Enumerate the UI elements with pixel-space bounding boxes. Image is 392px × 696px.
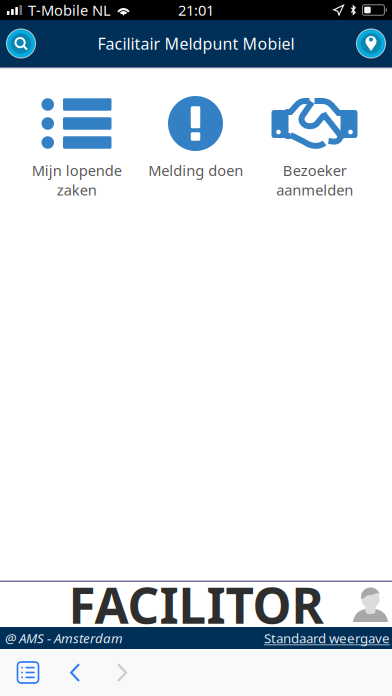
staticText: 21:01: [178, 0, 214, 20]
button[interactable]: Reader: [5, 649, 51, 696]
button[interactable]: Vooruit: [99, 649, 145, 696]
button[interactable]: Standaard weergave: [264, 629, 390, 647]
staticText: Bezoeker aanmelden: [276, 160, 353, 199]
staticText: FACILITOR: [68, 572, 323, 637]
button[interactable]: Zoeken: [0, 20, 42, 67]
staticText: Melding doen: [148, 160, 243, 180]
staticText: @ AMS - Amsterdam: [5, 629, 123, 647]
button[interactable]: Mijn lopende zaken: [17, 68, 136, 208]
button[interactable]: Melding doen: [136, 68, 255, 208]
staticText: Mijn lopende zaken: [31, 160, 121, 199]
button[interactable]: Locatie: [350, 20, 392, 67]
staticText: Facilitair Meldpunt Mobiel: [97, 33, 294, 54]
staticText: Standaard weergave: [264, 629, 390, 647]
button[interactable]: Bezoeker aanmelden: [255, 68, 374, 208]
button[interactable]: Terug: [51, 649, 99, 696]
staticText: T-Mobile NL: [28, 0, 111, 20]
